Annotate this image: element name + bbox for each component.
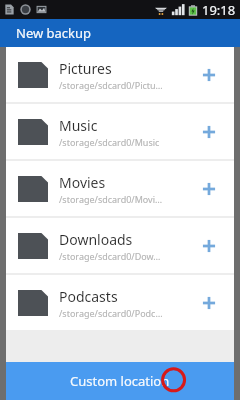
- staticText: Downloads: [59, 230, 133, 249]
- button[interactable]: Custom location: [6, 362, 234, 400]
- staticText: New backup: [16, 24, 92, 42]
- staticText: Custom location: [70, 372, 170, 390]
- button[interactable]: Movies: [6, 161, 234, 216]
- button[interactable]: Add Downloads: [194, 231, 224, 261]
- button[interactable]: Music: [6, 104, 234, 159]
- staticText: Movies: [59, 173, 106, 192]
- staticText: /storage/sdcard0/Pictu…: [59, 79, 163, 91]
- staticText: 19:18: [202, 1, 236, 19]
- staticText: Podcasts: [59, 287, 118, 306]
- button[interactable]: Downloads: [6, 218, 234, 273]
- button[interactable]: Add Movies: [194, 174, 224, 204]
- button[interactable]: Add Music: [194, 117, 224, 147]
- button[interactable]: Podcasts: [6, 275, 234, 330]
- staticText: /storage/sdcard0/Music: [59, 136, 160, 148]
- staticText: Pictures: [59, 59, 112, 78]
- button[interactable]: Add Pictures: [194, 60, 224, 90]
- staticText: /storage/sdcard0/Podc…: [59, 307, 163, 319]
- staticText: Music: [59, 116, 98, 135]
- button[interactable]: New backup: [0, 19, 240, 47]
- staticText: /storage/sdcard0/Movi…: [59, 193, 163, 205]
- button[interactable]: Add Podcasts: [194, 288, 224, 318]
- staticText: /storage/sdcard0/Dow…: [59, 250, 161, 262]
- button[interactable]: Pictures: [6, 47, 234, 102]
